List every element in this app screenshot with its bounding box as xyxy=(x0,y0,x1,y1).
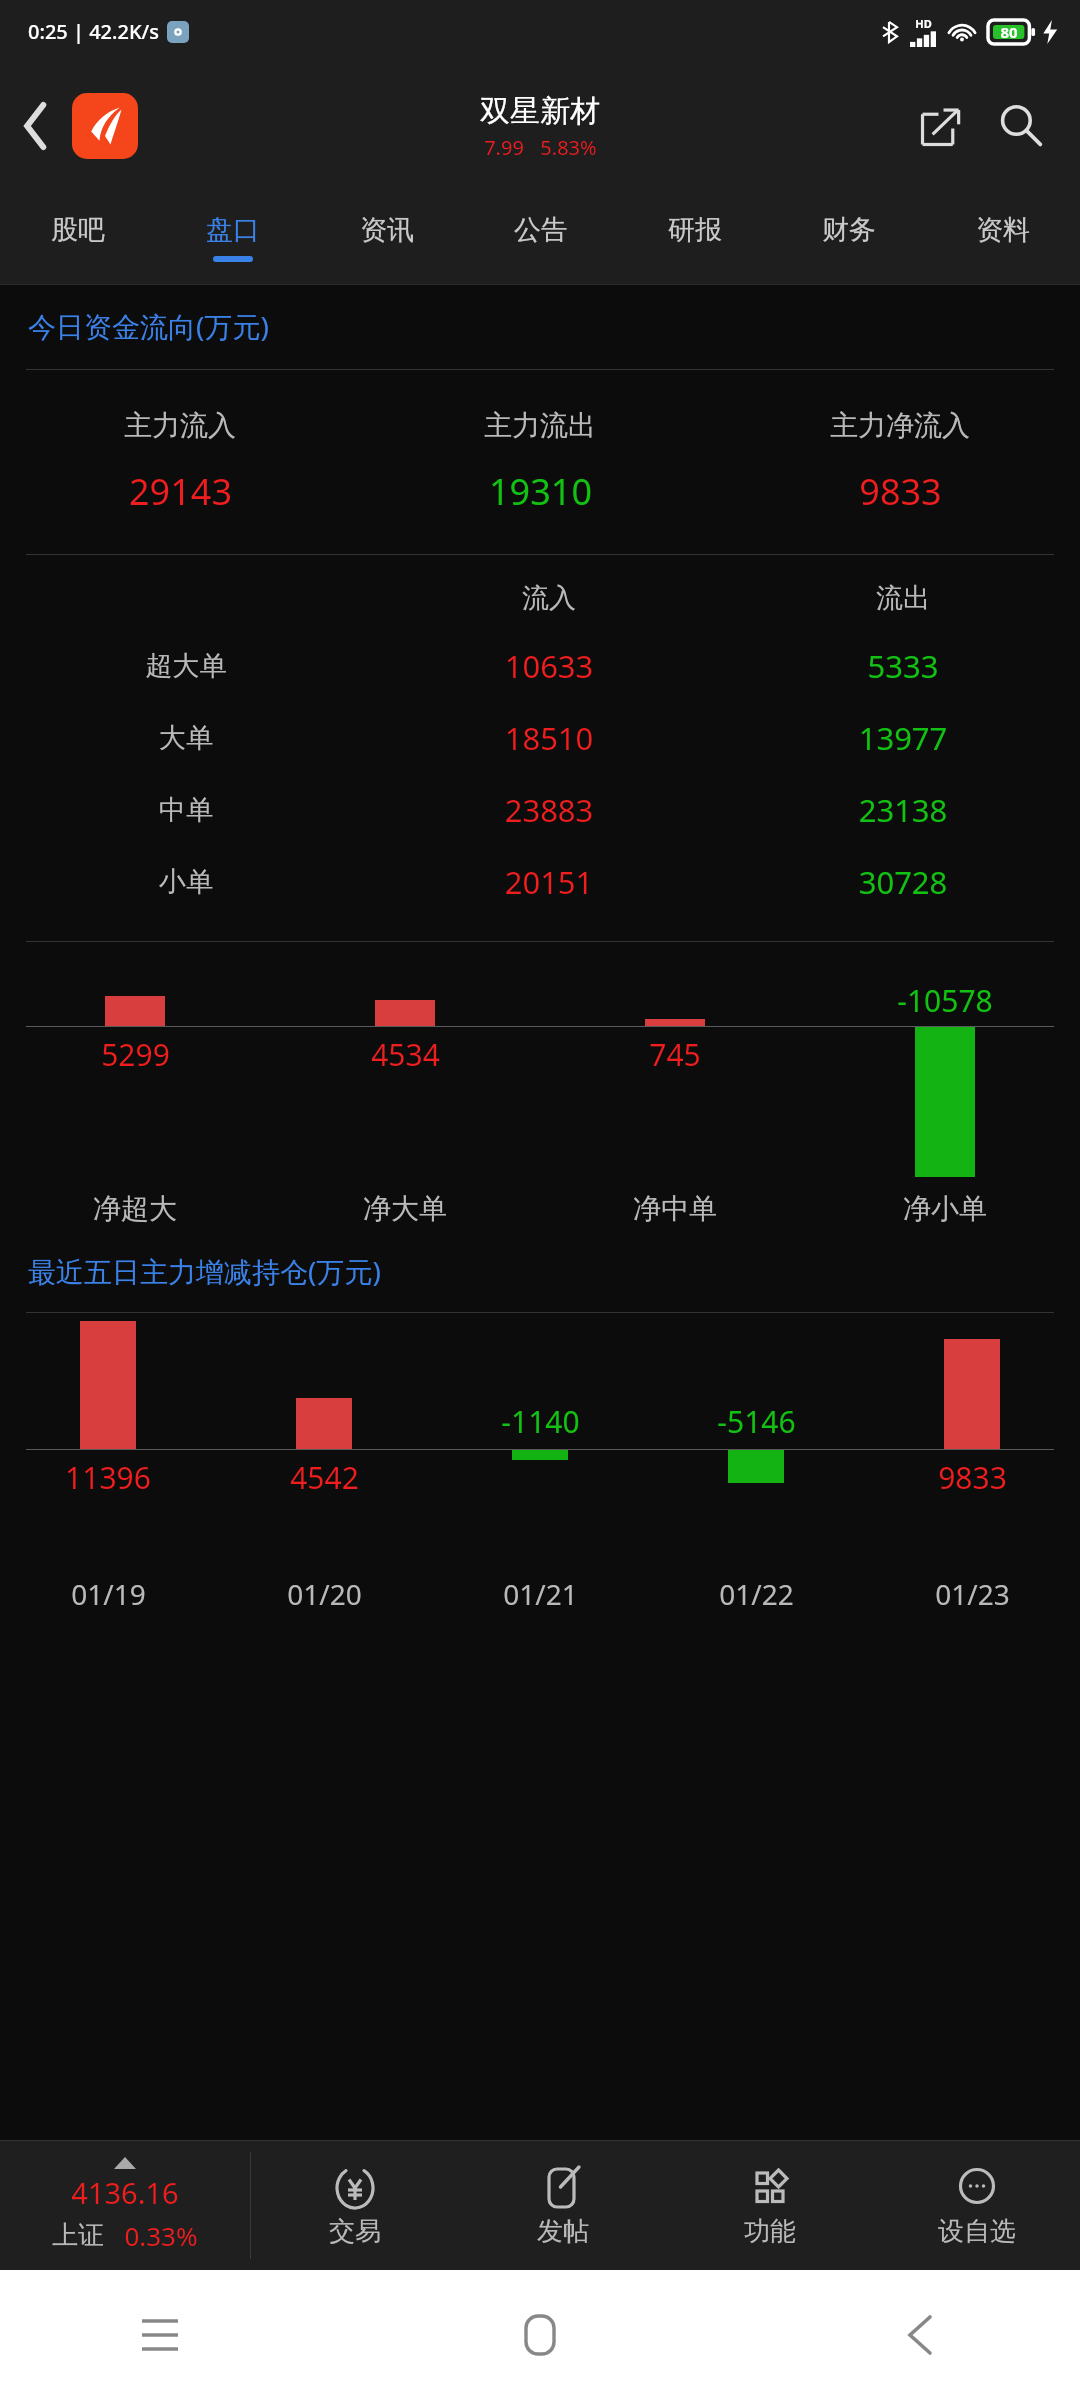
button[interactable]: Back xyxy=(880,2295,960,2375)
staticText: 01/20 xyxy=(287,1575,362,1613)
staticText: 80 xyxy=(1000,22,1018,42)
staticText: -5146 xyxy=(717,1401,796,1442)
button[interactable]: Share xyxy=(906,91,976,161)
button[interactable]: 研报 xyxy=(618,190,772,285)
staticText: 20151 xyxy=(372,861,726,903)
staticText: 0.33% xyxy=(124,2218,198,2253)
staticText: 23883 xyxy=(372,789,726,831)
staticText: 01/23 xyxy=(935,1575,1010,1613)
staticText: 29143 xyxy=(129,467,232,516)
staticText: 4542 xyxy=(290,1457,359,1498)
staticText: 745 xyxy=(649,1034,701,1075)
staticText: 研报 xyxy=(668,213,722,247)
staticText: 资讯 xyxy=(360,213,414,247)
staticText: 5333 xyxy=(726,645,1080,687)
staticText: 发帖 xyxy=(537,2215,589,2248)
staticText: 净中单 xyxy=(633,1191,717,1226)
staticText: 5.83% xyxy=(540,134,597,161)
staticText: 01/21 xyxy=(503,1575,578,1613)
button[interactable]: 4136.16 xyxy=(0,2140,250,2270)
staticText: 超大单 xyxy=(0,649,372,683)
button[interactable]: 交易 xyxy=(251,2140,459,2270)
button[interactable]: Home xyxy=(500,2295,580,2375)
staticText: 30728 xyxy=(726,861,1080,903)
staticText: -10578 xyxy=(897,980,993,1021)
button[interactable]: 资讯 xyxy=(310,190,464,285)
staticText: 7.99 xyxy=(484,134,524,161)
button[interactable]: Back xyxy=(0,90,72,162)
staticText: 净小单 xyxy=(903,1191,987,1226)
staticText: 上证 xyxy=(52,2219,104,2252)
staticText: 0:25 | 42.2K/s xyxy=(28,18,159,45)
staticText: -1140 xyxy=(501,1401,580,1442)
staticText: 股吧 xyxy=(51,213,105,247)
staticText: 4136.16 xyxy=(71,2173,179,2212)
staticText: 主力流入 xyxy=(124,408,236,443)
staticText: 设自选 xyxy=(938,2215,1016,2248)
button[interactable]: 盘口 xyxy=(155,190,310,285)
staticText: 23138 xyxy=(726,789,1080,831)
button[interactable]: 资料 xyxy=(926,190,1080,285)
staticText: 交易 xyxy=(329,2215,381,2248)
staticText: 公告 xyxy=(514,213,568,247)
staticText: 功能 xyxy=(744,2215,796,2248)
staticText: 01/19 xyxy=(71,1575,146,1613)
button[interactable]: Search xyxy=(986,91,1056,161)
staticText: 13977 xyxy=(726,717,1080,759)
staticText: HD xyxy=(915,16,932,31)
staticText: 今日资金流向(万元) xyxy=(28,307,269,345)
button[interactable]: Recents xyxy=(120,2295,200,2375)
button[interactable]: 股吧 xyxy=(0,190,155,285)
staticText: 11396 xyxy=(65,1457,151,1498)
staticText: 盘口 xyxy=(206,213,260,247)
button[interactable]: 设自选 xyxy=(873,2140,1080,2270)
staticText: 01/22 xyxy=(719,1575,794,1613)
staticText: 流入 xyxy=(372,581,726,615)
staticText: 10633 xyxy=(372,645,726,687)
staticText: 小单 xyxy=(0,865,372,899)
staticText: 9833 xyxy=(859,467,942,516)
staticText: 净超大 xyxy=(93,1191,177,1226)
staticText: 19310 xyxy=(489,467,592,516)
button[interactable]: 财务 xyxy=(772,190,926,285)
staticText: 最近五日主力增减持仓(万元) xyxy=(28,1252,381,1290)
staticText: 4534 xyxy=(371,1034,440,1075)
staticText: 5299 xyxy=(101,1034,170,1075)
staticText: 资料 xyxy=(976,213,1030,247)
button[interactable]: 功能 xyxy=(666,2140,873,2270)
staticText: 中单 xyxy=(0,793,372,827)
staticText: 主力流出 xyxy=(484,408,596,443)
button[interactable]: 公告 xyxy=(464,190,618,285)
button[interactable]: App logo xyxy=(72,93,138,159)
staticText: 净大单 xyxy=(363,1191,447,1226)
staticText: 18510 xyxy=(372,717,726,759)
staticText: 流出 xyxy=(726,581,1080,615)
staticText: 双星新材 xyxy=(480,92,600,130)
button[interactable]: 发帖 xyxy=(459,2140,666,2270)
staticText: 主力净流入 xyxy=(830,408,970,443)
staticText: 9833 xyxy=(938,1457,1007,1498)
staticText: 大单 xyxy=(0,721,372,755)
staticText: 财务 xyxy=(822,213,876,247)
